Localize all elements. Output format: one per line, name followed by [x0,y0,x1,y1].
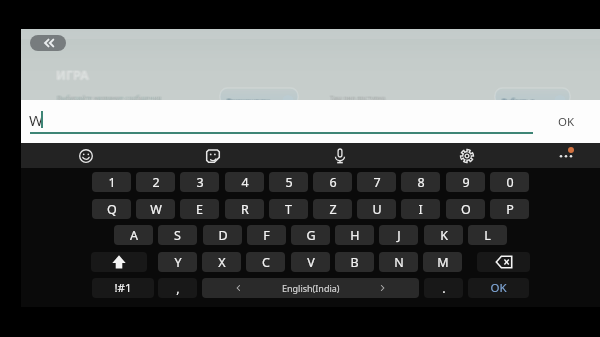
button[interactable]: 4 [225,172,264,192]
staticText: Рекомендуем [227,98,270,107]
button[interactable]: L [468,225,507,245]
button[interactable]: , [158,278,197,298]
staticText: Q [107,201,117,218]
button[interactable]: S [158,225,197,245]
staticText: Выбирайте название сообщения [56,94,161,103]
staticText: Выбирайте название сообщения [56,94,161,103]
button[interactable]: 9 [446,172,485,192]
staticText: English(India) [282,282,340,294]
button[interactable]: Z [313,199,352,219]
staticText: D [218,227,228,244]
button[interactable]: 8 [401,172,440,192]
staticText: Выбрать в [501,97,534,106]
staticText: I [418,201,423,218]
button[interactable]: A [114,225,153,245]
button[interactable]: H [335,225,374,245]
staticText: ИГРА [57,67,90,84]
button[interactable]: D [203,225,242,245]
button[interactable]: OK [545,106,587,137]
button[interactable]: Emoji [73,143,98,168]
staticText: Там она доступна [331,94,387,103]
button[interactable]: Q [92,199,131,219]
button[interactable]: . [424,278,463,298]
button[interactable]: More options [553,143,578,168]
staticText: K [440,227,448,244]
staticText: Выбрать в [503,96,536,105]
button[interactable]: 6 [313,172,352,192]
button[interactable]: 0 [490,172,529,192]
staticText: ИГРА [56,66,89,83]
staticText: 8 [417,174,425,191]
button[interactable]: C [246,252,285,272]
button[interactable]: G [291,225,330,245]
staticText: 0 [506,174,514,191]
staticText: N [394,254,404,271]
staticText: OK [558,114,575,130]
button[interactable]: K [424,225,463,245]
button[interactable]: OK [468,278,529,298]
button[interactable]: U [357,199,396,219]
button[interactable]: W [136,199,175,219]
button[interactable]: O [446,199,485,219]
staticText: ИГРА [57,66,90,83]
button[interactable]: B [335,252,374,272]
button[interactable]: J [379,225,418,245]
button[interactable]: 1 [92,172,131,192]
staticText: Выбрать в [501,97,534,106]
button[interactable]: 3 [180,172,219,192]
staticText: 4 [241,174,249,191]
button[interactable]: N [379,252,418,272]
staticText: 3 [196,174,204,191]
staticText: J [397,227,401,244]
button[interactable]: 5 [269,172,308,192]
button[interactable]: Backspace [477,252,530,272]
staticText: Выбирайте название сообщения [57,93,162,102]
staticText: Выбрать в [502,96,535,105]
button[interactable]: English(India) [202,278,419,298]
button[interactable]: Voice input [327,143,352,168]
staticText: V [307,254,315,271]
button[interactable]: P [490,199,529,219]
staticText: P [506,201,514,218]
staticText: Рекомендуем [226,97,269,106]
button[interactable]: Back [30,35,66,51]
staticText: OK [490,280,507,296]
staticText: X [218,254,226,271]
staticText: Выбрать в [501,96,534,105]
staticText: Там она доступна [331,94,387,103]
staticText: O [461,201,471,218]
staticText: S [174,227,181,244]
staticText: . [442,280,446,297]
button[interactable]: 2 [136,172,175,192]
button[interactable]: T [269,199,308,219]
staticText: ИГРА [55,67,88,84]
button[interactable]: M [423,252,462,272]
staticText: F [263,227,270,244]
staticText: Рекомендуем [227,97,270,106]
staticText: L [484,227,491,244]
button[interactable]: I [401,199,440,219]
staticText: Выбирайте название сообщения [57,95,162,104]
button[interactable]: R [225,199,264,219]
staticText: Выбирайте название сообщения [58,94,163,103]
staticText: W [150,201,162,218]
staticText: Там она доступна [330,93,386,102]
staticText: Там она доступна [330,95,386,104]
staticText: A [130,227,138,244]
button[interactable]: F [247,225,286,245]
button[interactable]: E [180,199,219,219]
button[interactable]: 7 [357,172,396,192]
button[interactable]: Y [158,252,197,272]
button[interactable]: Settings [454,143,479,168]
staticText: Выбирайте название сообщения [57,94,162,103]
staticText: 6 [329,174,337,191]
staticText: B [350,254,359,271]
button[interactable]: Shift [91,252,147,272]
staticText: Там она доступна [329,94,385,103]
button[interactable]: V [291,252,330,272]
button[interactable]: X [202,252,241,272]
button[interactable]: !#1 [92,278,154,298]
staticText: Рекомендуем [226,96,269,105]
button[interactable]: Stickers [200,143,225,168]
staticText: Рекомендуем [227,96,270,105]
